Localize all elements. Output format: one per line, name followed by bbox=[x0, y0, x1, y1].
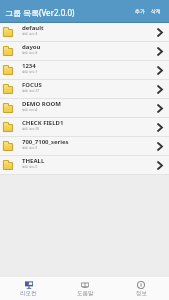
button[interactable]: dayou bbox=[0, 42, 169, 60]
other: Open dayou bbox=[152, 42, 168, 60]
staticText: default bbox=[22, 24, 44, 32]
button[interactable]: 도움말 bbox=[57, 278, 113, 300]
button[interactable]: 삭제 bbox=[147, 8, 169, 14]
button[interactable]: CHECK FIELD1 bbox=[0, 118, 169, 136]
staticText: 700_7100_series bbox=[22, 138, 69, 146]
staticText: 추가 bbox=[135, 8, 145, 14]
button[interactable]: default bbox=[0, 23, 169, 41]
other: Open 1234 bbox=[152, 61, 168, 79]
other: Open FOCUS bbox=[152, 80, 168, 98]
button[interactable]: 리모컨 bbox=[0, 278, 57, 300]
button[interactable]: DEMO ROOM bbox=[0, 99, 169, 117]
staticText: DEMO ROOM bbox=[22, 100, 61, 108]
staticText: 삭제 bbox=[151, 8, 161, 14]
staticText: 항목 갯수:1 bbox=[22, 70, 38, 74]
staticText: 도움말 bbox=[77, 290, 94, 297]
staticText: 항목 갯수:17 bbox=[22, 89, 40, 93]
staticText: 1234 bbox=[22, 62, 36, 70]
staticText: 항목 갯수:7 bbox=[22, 146, 38, 150]
staticText: 항목 갯수:4 bbox=[22, 108, 38, 112]
staticText: FOCUS bbox=[22, 81, 42, 89]
button[interactable]: 정보 bbox=[113, 278, 169, 300]
staticText: dayou bbox=[22, 43, 41, 51]
staticText: CHECK FIELD1 bbox=[22, 119, 64, 127]
button[interactable]: 700_7100_series bbox=[0, 137, 169, 155]
staticText: 정보 bbox=[136, 290, 147, 297]
staticText: 항목 갯수:3 bbox=[22, 51, 38, 55]
staticText: 항목 갯수:16 bbox=[22, 127, 40, 131]
button[interactable]: 추가 bbox=[133, 8, 147, 14]
staticText: 항목 갯수:7 bbox=[22, 165, 38, 169]
other: Open CHECK FIELD1 bbox=[152, 118, 168, 136]
staticText: THEALL bbox=[22, 157, 45, 165]
other: Open default bbox=[152, 23, 168, 41]
staticText: 그룹 목록(Ver2.0.0) bbox=[5, 7, 75, 18]
staticText: 리모컨 bbox=[20, 290, 37, 297]
staticText: 항목 갯수:3 bbox=[22, 32, 38, 36]
other: Open THEALL bbox=[152, 156, 168, 174]
button[interactable]: FOCUS bbox=[0, 80, 169, 98]
button[interactable]: 1234 bbox=[0, 61, 169, 79]
button[interactable]: THEALL bbox=[0, 156, 169, 174]
other: Open 700_7100_series bbox=[152, 137, 168, 155]
other: Open DEMO ROOM bbox=[152, 99, 168, 117]
